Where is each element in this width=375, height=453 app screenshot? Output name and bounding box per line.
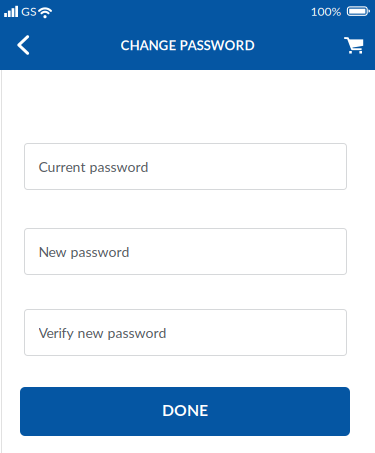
staticText: CHANGE PASSWORD — [120, 37, 254, 53]
button[interactable]: Current password — [24, 143, 347, 190]
staticText: Current password — [38, 158, 148, 175]
staticText: DONE — [162, 401, 208, 419]
staticText: 100% — [310, 4, 341, 18]
button[interactable]: Verify new password — [24, 309, 347, 356]
button[interactable]: New password — [24, 228, 347, 275]
button[interactable]: DONE — [20, 387, 350, 436]
staticText: New password — [38, 243, 129, 260]
staticText: GS — [21, 4, 37, 18]
button[interactable]: Back — [0, 22, 46, 70]
button[interactable]: Cart — [330, 22, 375, 70]
staticText: Verify new password — [38, 324, 166, 341]
